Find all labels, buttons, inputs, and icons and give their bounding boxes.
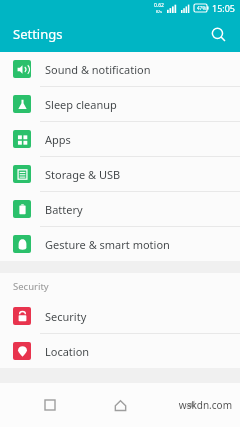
button[interactable]: Location bbox=[0, 334, 240, 368]
staticText: Apps bbox=[45, 132, 71, 147]
button[interactable]: Gesture & smart motion bbox=[0, 227, 240, 261]
button[interactable]: Sound & notification bbox=[0, 52, 240, 86]
staticText: Security bbox=[45, 309, 87, 324]
staticText: 0.62 bbox=[154, 2, 164, 9]
button[interactable]: Battery bbox=[0, 192, 240, 226]
button[interactable]: Recents bbox=[33, 388, 67, 422]
staticText: K/s bbox=[156, 9, 162, 14]
staticText: wskdn.com bbox=[178, 398, 232, 412]
button[interactable]: Back bbox=[173, 388, 207, 422]
button[interactable]: Sleep cleanup bbox=[0, 87, 240, 121]
button[interactable]: Apps bbox=[0, 122, 240, 156]
staticText: 47% bbox=[197, 5, 206, 11]
staticText: Sound & notification bbox=[45, 62, 151, 77]
staticText: 15:05 bbox=[212, 2, 236, 14]
button[interactable]: Storage & USB bbox=[0, 157, 240, 191]
staticText: Location bbox=[45, 344, 90, 359]
staticText: Gesture & smart motion bbox=[45, 237, 170, 252]
staticText: Sleep cleanup bbox=[45, 97, 117, 112]
button[interactable]: Search bbox=[204, 20, 232, 48]
staticText: Battery bbox=[45, 202, 83, 217]
button[interactable]: Home bbox=[103, 388, 137, 422]
staticText: Security bbox=[13, 280, 49, 293]
staticText: Settings bbox=[13, 25, 63, 43]
button[interactable]: Security bbox=[0, 299, 240, 333]
staticText: Storage & USB bbox=[45, 167, 121, 182]
